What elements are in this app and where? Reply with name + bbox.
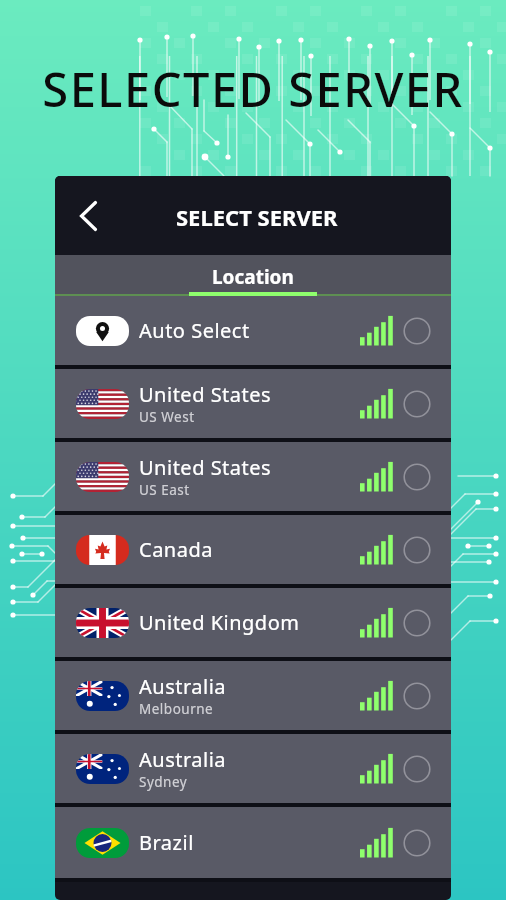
staticText: SELECT SERVER xyxy=(176,202,338,232)
staticText: Canada xyxy=(139,536,213,563)
staticText: Brazil xyxy=(139,829,194,856)
button[interactable]: Australia xyxy=(55,661,451,734)
staticText: United States xyxy=(139,381,272,408)
staticText: Australia xyxy=(139,746,227,773)
staticText: Sydney xyxy=(139,773,188,791)
button[interactable]: Australia xyxy=(55,734,451,807)
button[interactable]: Back xyxy=(68,196,108,236)
staticText: SELECTED SERVER xyxy=(0,57,506,121)
button[interactable]: United Kingdom xyxy=(55,588,451,661)
button[interactable]: United States xyxy=(55,369,451,442)
button[interactable]: Location xyxy=(55,255,451,296)
staticText: United Kingdom xyxy=(139,609,300,636)
button[interactable]: Auto Select xyxy=(55,296,451,369)
staticText: US East xyxy=(139,481,190,499)
button[interactable]: Canada xyxy=(55,515,451,588)
staticText: Location xyxy=(212,264,294,290)
staticText: United States xyxy=(139,454,272,481)
button[interactable]: Brazil xyxy=(55,807,451,882)
staticText: Melbourne xyxy=(139,700,214,718)
staticText: Australia xyxy=(139,673,227,700)
button[interactable]: United States xyxy=(55,442,451,515)
staticText: Auto Select xyxy=(139,317,250,344)
staticText: US West xyxy=(139,408,195,426)
